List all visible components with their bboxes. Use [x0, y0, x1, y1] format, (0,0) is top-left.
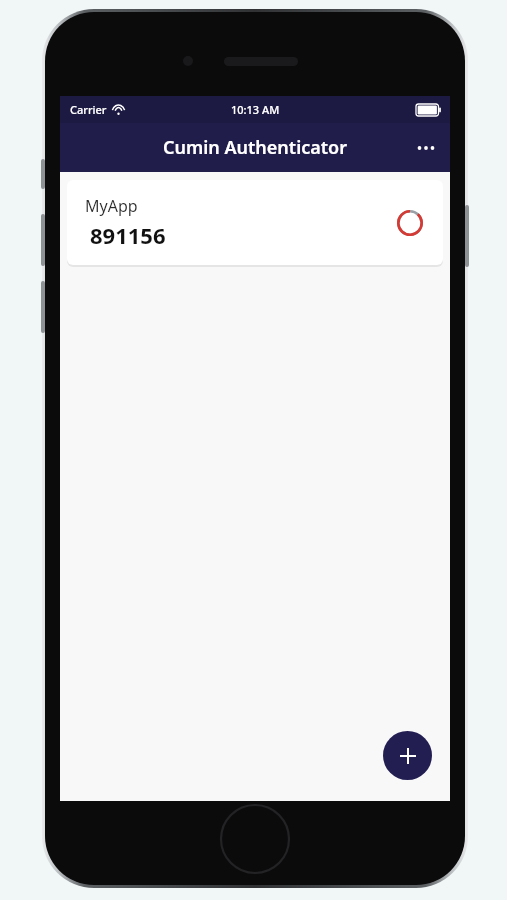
staticText: Cumin Authenticator [60, 135, 450, 160]
button[interactable]: More options [402, 124, 450, 172]
button[interactable]: MyApp [67, 180, 443, 265]
staticText: MyApp [85, 195, 138, 217]
staticText: Carrier [70, 102, 107, 117]
staticText: 10:13 AM [231, 102, 280, 117]
staticText: 891156 [90, 220, 166, 250]
button[interactable]: Add account [383, 731, 432, 780]
